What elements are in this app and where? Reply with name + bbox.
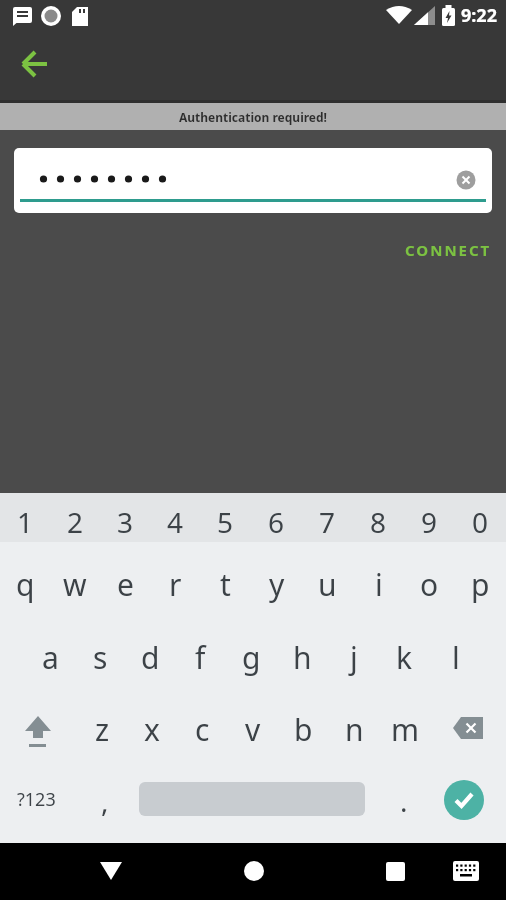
button[interactable]: u [302, 542, 353, 615]
staticText: r [169, 564, 182, 605]
staticText: 3 [117, 503, 134, 541]
button[interactable]: , [73, 760, 136, 838]
button[interactable]: CONNECT [399, 234, 498, 266]
button[interactable]: i [353, 542, 404, 615]
staticText: j [350, 637, 358, 678]
button[interactable]: y [251, 542, 302, 615]
staticText: 9:22 [461, 3, 497, 28]
button[interactable]: t [200, 542, 251, 615]
button[interactable] [442, 847, 490, 895]
staticText: . [400, 782, 408, 820]
staticText: f [195, 637, 206, 678]
staticText: m [391, 709, 420, 750]
button[interactable]: 4 [150, 493, 200, 542]
button[interactable] [230, 847, 278, 895]
button[interactable]: c [177, 687, 227, 760]
staticText: z [95, 709, 110, 750]
staticText: u [318, 564, 337, 605]
button[interactable]: z [77, 687, 127, 760]
button[interactable]: q [0, 542, 50, 615]
staticText: 5 [217, 503, 234, 541]
button[interactable]: p [455, 542, 506, 615]
button[interactable]: f [175, 615, 226, 687]
staticText: h [293, 637, 312, 678]
staticText: i [375, 564, 383, 605]
button[interactable]: 9 [404, 493, 455, 542]
staticText: e [117, 564, 134, 605]
button[interactable]: l [430, 615, 481, 687]
staticText: n [345, 709, 364, 750]
staticText: ?123 [17, 787, 56, 812]
button[interactable]: 2 [50, 493, 100, 542]
staticText: Authentication required! [179, 109, 327, 125]
button[interactable]: b [278, 687, 329, 760]
staticText: 2 [67, 503, 84, 541]
button[interactable]: h [277, 615, 328, 687]
staticText: , [101, 782, 109, 820]
button[interactable]: w [50, 542, 100, 615]
staticText: 4 [167, 503, 184, 541]
staticText: v [245, 709, 261, 750]
button[interactable] [87, 847, 135, 895]
staticText: t [220, 564, 231, 605]
button[interactable]: 3 [100, 493, 150, 542]
button[interactable] [11, 41, 59, 89]
button[interactable]: o [404, 542, 455, 615]
button[interactable]: r [150, 542, 200, 615]
button[interactable]: n [329, 687, 380, 760]
button[interactable]: d [125, 615, 175, 687]
staticText: y [269, 564, 285, 605]
staticText: k [396, 637, 413, 678]
staticText: p [471, 564, 490, 605]
staticText: 8 [370, 503, 387, 541]
button[interactable]: x [127, 687, 177, 760]
staticText: o [420, 564, 439, 605]
staticText: a [42, 637, 59, 678]
button[interactable]: e [100, 542, 150, 615]
staticText: x [144, 709, 160, 750]
staticText: 7 [319, 503, 336, 541]
button[interactable]: 0 [455, 493, 506, 542]
button[interactable]: . [368, 760, 440, 838]
button[interactable]: m [380, 687, 431, 760]
button[interactable]: j [328, 615, 379, 687]
staticText: d [141, 637, 160, 678]
button[interactable]: a [25, 615, 75, 687]
staticText: q [16, 564, 35, 605]
staticText: 0 [472, 503, 489, 541]
staticText: c [195, 709, 210, 750]
button[interactable]: g [226, 615, 277, 687]
staticText: 1 [17, 503, 34, 541]
button[interactable]: s [75, 615, 125, 687]
button[interactable]: k [379, 615, 430, 687]
staticText: l [452, 637, 460, 678]
staticText: CONNECT [405, 240, 492, 260]
staticText: b [294, 709, 313, 750]
button[interactable] [444, 780, 484, 820]
staticText: w [63, 564, 87, 605]
button[interactable] [14, 148, 492, 213]
button[interactable]: 8 [353, 493, 404, 542]
staticText: g [242, 637, 261, 678]
button[interactable]: 1 [0, 493, 50, 542]
button[interactable]: 5 [200, 493, 251, 542]
button[interactable]: 7 [302, 493, 353, 542]
button[interactable]: ?123 [0, 760, 73, 838]
button[interactable]: v [227, 687, 278, 760]
button[interactable]: 6 [251, 493, 302, 542]
staticText: 9 [421, 503, 438, 541]
staticText: s [93, 637, 108, 678]
button[interactable] [0, 687, 76, 760]
button[interactable] [371, 847, 419, 895]
staticText: 6 [268, 503, 285, 541]
button[interactable] [431, 687, 506, 760]
